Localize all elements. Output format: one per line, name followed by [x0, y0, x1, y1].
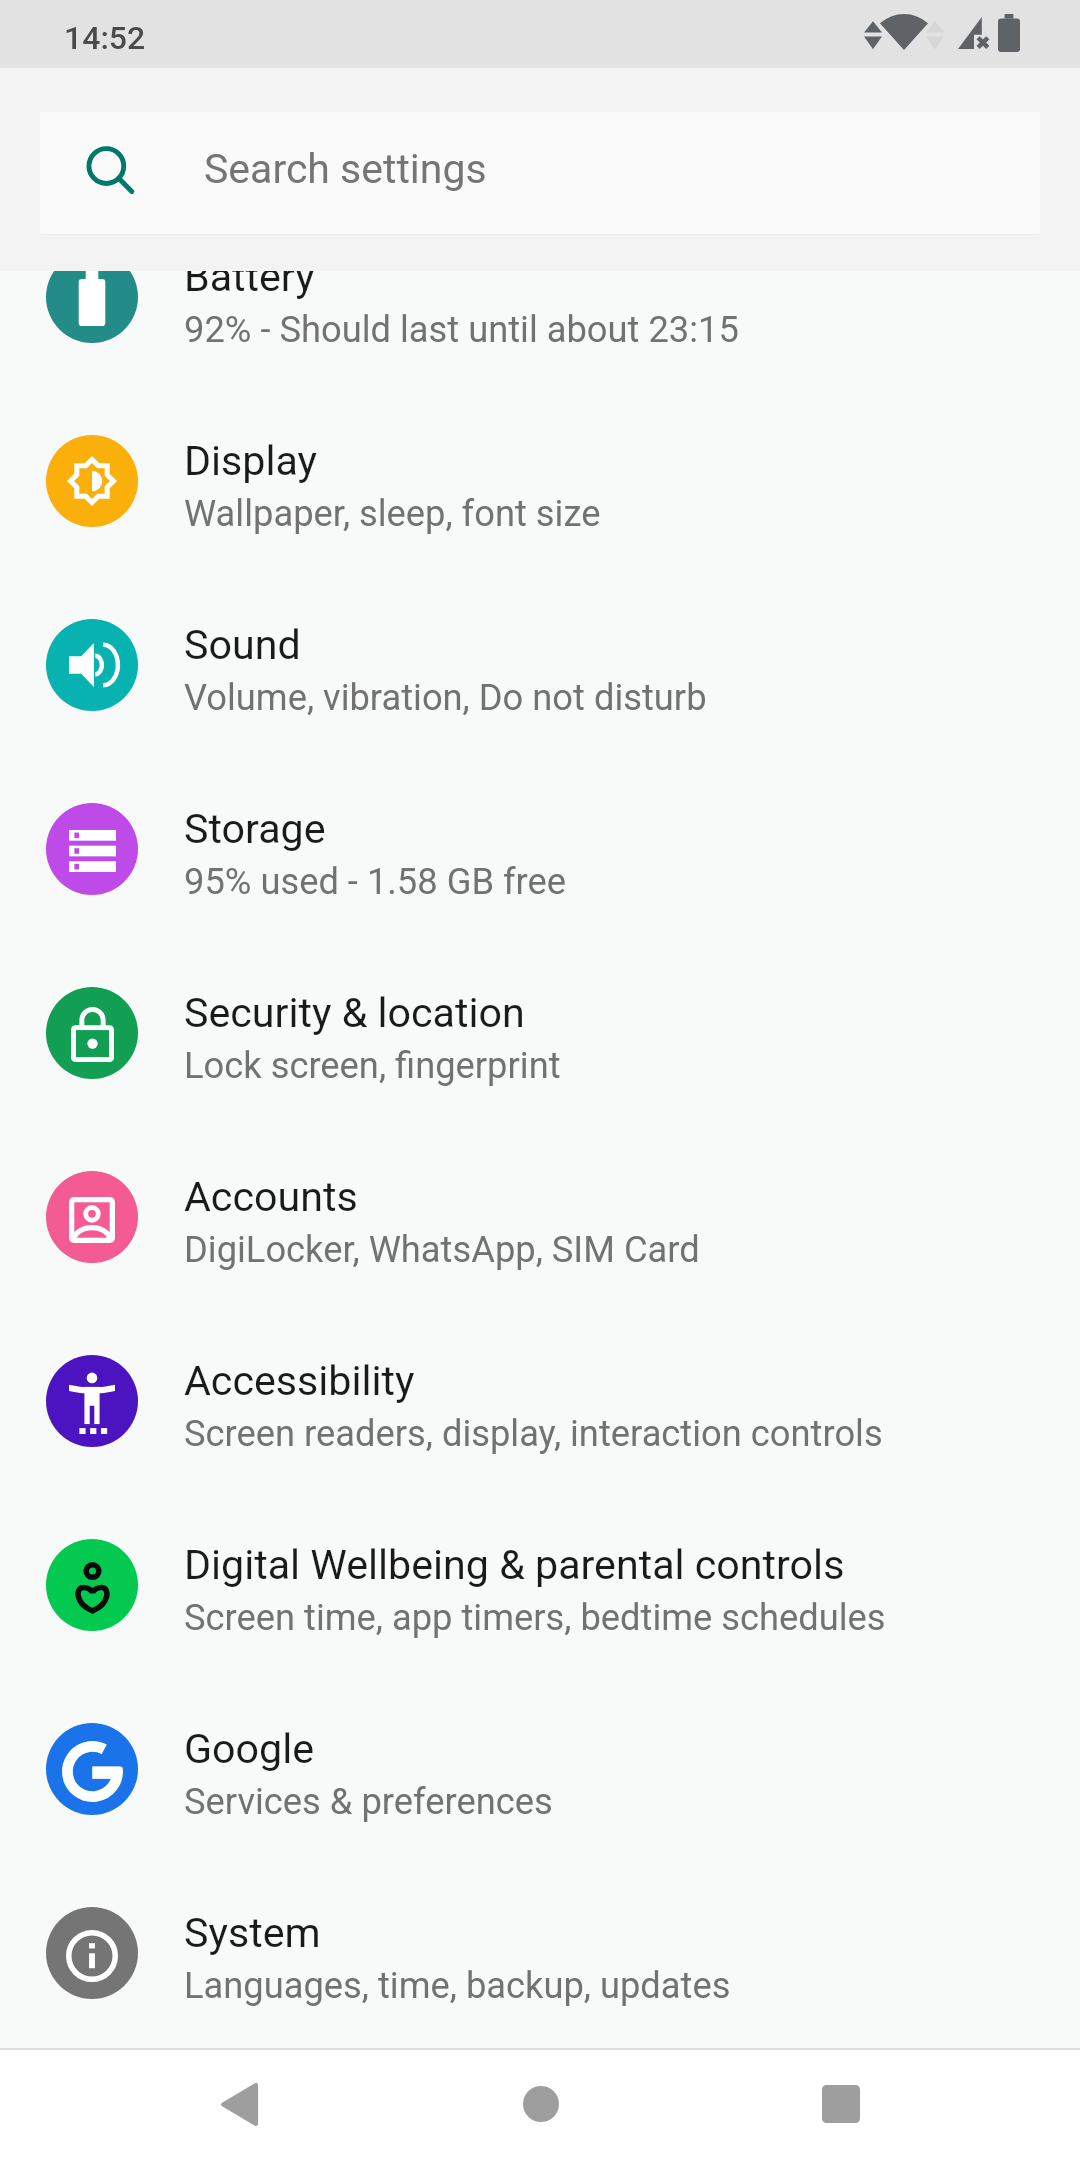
staticText: Battery [184, 253, 315, 301]
staticText: DigiLocker, WhatsApp, SIM Card [184, 1228, 700, 1271]
staticText: Lock screen, fingerprint [184, 1044, 561, 1087]
button[interactable]: Accounts [0, 1125, 1080, 1309]
button[interactable]: Storage [0, 757, 1080, 941]
button[interactable]: Back [180, 2050, 297, 2160]
staticText: 92% - Should last until about 23:15 [184, 308, 739, 351]
button[interactable]: Recent apps [782, 2050, 899, 2160]
staticText: Screen readers, display, interaction con… [184, 1412, 883, 1455]
staticText: Languages, time, backup, updates [184, 1964, 731, 2007]
staticText: System [184, 1909, 321, 1957]
staticText: Search settings [204, 145, 487, 193]
staticText: Digital Wellbeing & parental controls [184, 1541, 845, 1589]
staticText: 95% used - 1.58 GB free [184, 860, 567, 903]
staticText: Sound [184, 621, 301, 669]
button[interactable]: Google [0, 1677, 1080, 1861]
button[interactable]: Accessibility [0, 1309, 1080, 1493]
button[interactable]: Digital Wellbeing & parental controls [0, 1493, 1080, 1677]
staticText: Accounts [184, 1173, 358, 1221]
button[interactable]: Display [0, 389, 1080, 573]
staticText: 14:52 [64, 19, 146, 57]
button[interactable]: System [0, 1861, 1080, 2045]
button[interactable]: Search settings [40, 112, 1040, 234]
button[interactable]: Home [482, 2050, 599, 2160]
button[interactable]: Sound [0, 573, 1080, 757]
button[interactable]: Security & location [0, 941, 1080, 1125]
staticText: Storage [184, 805, 326, 853]
staticText: Security & location [184, 989, 525, 1037]
staticText: Google [184, 1725, 315, 1773]
staticText: Screen time, app timers, bedtime schedul… [184, 1596, 886, 1639]
button[interactable]: Battery [0, 205, 1080, 389]
staticText: Display [184, 437, 318, 485]
staticText: Wallpaper, sleep, font size [184, 492, 601, 535]
staticText: Accessibility [184, 1357, 415, 1405]
staticText: Volume, vibration, Do not disturb [184, 676, 707, 719]
staticText: Services & preferences [184, 1780, 553, 1823]
